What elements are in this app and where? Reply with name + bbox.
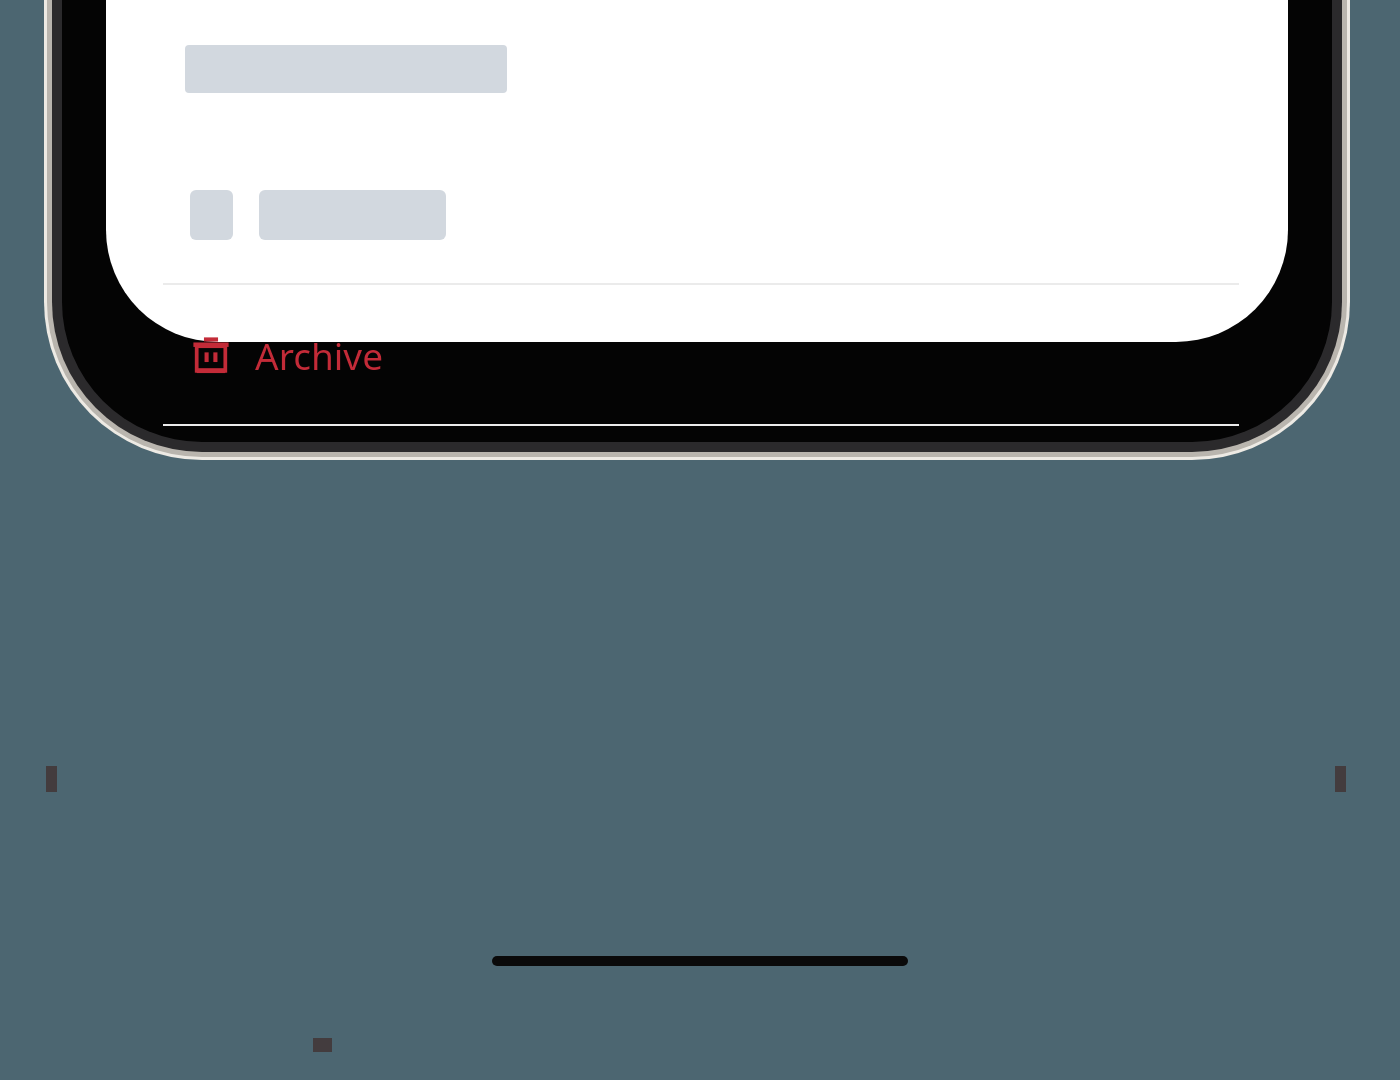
button[interactable]: Archive [163, 285, 1239, 424]
staticText: Archive [255, 330, 384, 380]
other: Archive [189, 333, 233, 377]
